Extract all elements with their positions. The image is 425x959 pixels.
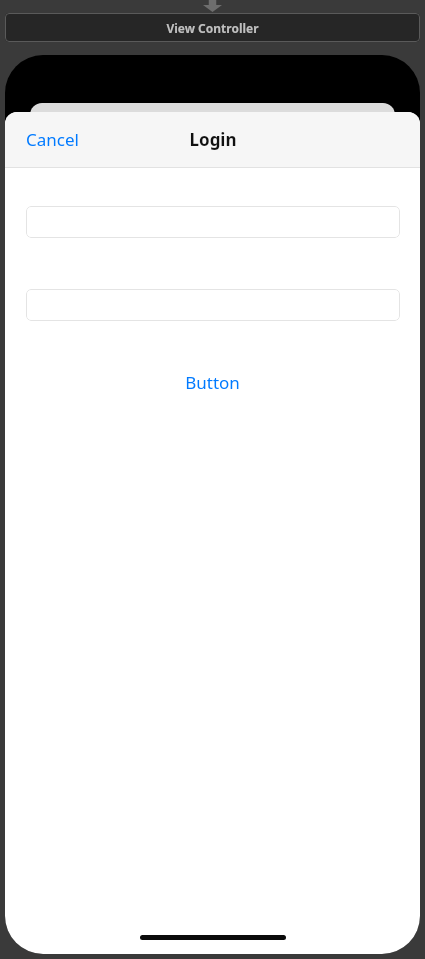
button[interactable]: Cancel [13, 120, 92, 159]
button[interactable]: Button [171, 365, 254, 400]
staticText: Button [185, 371, 240, 394]
staticText: View Controller [166, 20, 259, 36]
button[interactable]: Text field [26, 206, 400, 238]
button[interactable]: Text field [26, 289, 400, 321]
button[interactable]: View Controller [5, 13, 420, 42]
staticText: Login [189, 128, 237, 151]
staticText: Cancel [26, 128, 79, 151]
